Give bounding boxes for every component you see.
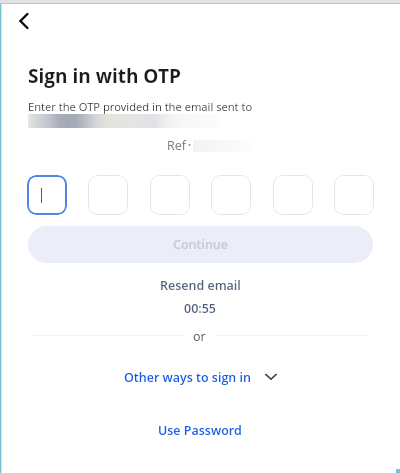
button[interactable]: OTP digit 2 (88, 175, 128, 215)
button[interactable]: Continue (28, 226, 373, 263)
staticText: Continue (173, 236, 228, 253)
button[interactable]: OTP digit 3 (150, 175, 190, 215)
button[interactable]: Resend email (160, 277, 241, 294)
button[interactable]: OTP digit 6 (334, 175, 374, 215)
staticText: Enter the OTP provided in the email sent… (28, 99, 253, 114)
button[interactable]: OTP digit 1 (27, 175, 67, 215)
staticText: Other ways to sign in (124, 369, 251, 386)
button[interactable]: OTP digit 5 (273, 175, 313, 215)
staticText: Sign in with OTP (28, 63, 181, 89)
button[interactable]: Back (10, 6, 40, 36)
staticText: 00:55 (184, 300, 216, 317)
button[interactable]: Use Password (158, 422, 242, 439)
staticText: Ref (167, 137, 186, 154)
button[interactable]: OTP digit 4 (211, 175, 251, 215)
button[interactable]: Other ways to sign in (124, 369, 277, 386)
staticText: or (193, 328, 206, 345)
